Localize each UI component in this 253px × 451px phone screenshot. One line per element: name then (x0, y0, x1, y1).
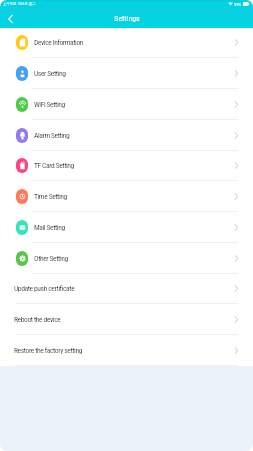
staticText: User Setting (34, 69, 66, 78)
button[interactable]: Other Setting (0, 243, 253, 274)
button[interactable]: Restore the factory setting (0, 335, 253, 366)
staticText: Update push certificate (14, 284, 75, 293)
staticText: Alarm Setting (34, 131, 70, 140)
staticText: Settings (114, 14, 140, 23)
staticText: 39% (234, 2, 242, 7)
staticText: Reboot the device (14, 315, 61, 324)
button[interactable]: WiFi Setting (0, 89, 253, 120)
button[interactable]: Alarm Setting (0, 120, 253, 151)
button[interactable]: Back (0, 8, 20, 28)
staticText: Time Setting (34, 192, 67, 201)
button[interactable]: Device Information (0, 28, 253, 58)
button[interactable]: Update push certificate (0, 274, 253, 304)
button[interactable]: User Setting (0, 58, 253, 89)
button[interactable]: TF Card Setting (0, 151, 253, 181)
button[interactable]: Mail Setting (0, 212, 253, 243)
staticText: Restore the factory setting (14, 346, 83, 355)
button[interactable]: Time Setting (0, 181, 253, 212)
staticText: 上午9:32 10.6月 星二 (3, 2, 36, 7)
staticText: Mail Setting (34, 223, 65, 232)
staticText: WiFi Setting (34, 100, 65, 109)
staticText: Other Setting (34, 254, 68, 263)
staticText: Device Information (34, 38, 84, 47)
staticText: TF Card Setting (34, 161, 74, 170)
button[interactable]: Reboot the device (0, 304, 253, 335)
